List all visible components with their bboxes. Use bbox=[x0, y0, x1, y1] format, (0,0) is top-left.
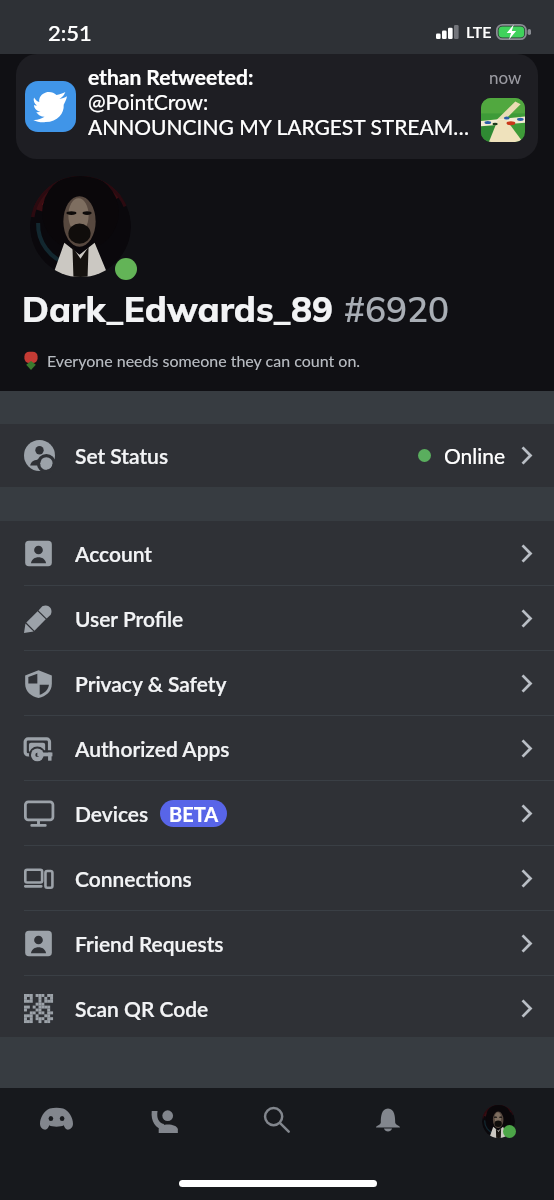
staticText: LTE bbox=[466, 22, 492, 41]
staticText: Friend Requests bbox=[75, 931, 224, 956]
staticText: Privacy & Safety bbox=[75, 671, 227, 696]
button[interactable]: Scan QR Code bbox=[0, 976, 554, 1041]
button[interactable]: Notifications bbox=[348, 1092, 428, 1136]
button[interactable]: Account bbox=[0, 521, 554, 586]
staticText: Dark_Edwards_89 bbox=[22, 287, 334, 331]
staticText: Connections bbox=[75, 866, 192, 891]
button[interactable]: Friends bbox=[126, 1092, 206, 1136]
staticText: Authorized Apps bbox=[75, 736, 230, 761]
button[interactable]: Authorized Apps bbox=[0, 716, 554, 781]
staticText: now bbox=[489, 67, 522, 87]
staticText: #6920 bbox=[344, 287, 450, 331]
button[interactable]: Connections bbox=[0, 846, 554, 911]
staticText: 2:51 bbox=[48, 19, 92, 45]
staticText: Scan QR Code bbox=[75, 996, 209, 1021]
button[interactable]: Privacy & Safety bbox=[0, 651, 554, 716]
button[interactable]: Home bbox=[16, 1092, 96, 1136]
button[interactable]: You bbox=[474, 1092, 522, 1140]
staticText: Set Status bbox=[75, 443, 169, 468]
staticText: Devices bbox=[75, 801, 149, 826]
staticText: BETA bbox=[169, 802, 219, 826]
staticText: ethan Retweeted: bbox=[88, 64, 254, 89]
button[interactable]: User Profile bbox=[0, 586, 554, 651]
button[interactable]: Friend Requests bbox=[0, 911, 554, 976]
staticText: Account bbox=[75, 541, 152, 566]
button[interactable]: Devices bbox=[0, 781, 554, 846]
staticText: Online bbox=[444, 443, 506, 468]
button[interactable]: Set Status bbox=[0, 424, 554, 487]
button[interactable]: ethan Retweeted: bbox=[16, 54, 538, 159]
staticText: @PointCrow: bbox=[88, 89, 209, 114]
staticText: ANNOUNCING MY LARGEST STREAM TODAY bbox=[88, 114, 472, 139]
staticText: User Profile bbox=[75, 606, 184, 631]
button[interactable]: Search bbox=[238, 1092, 318, 1136]
staticText: Everyone needs someone they can count on… bbox=[47, 351, 361, 370]
